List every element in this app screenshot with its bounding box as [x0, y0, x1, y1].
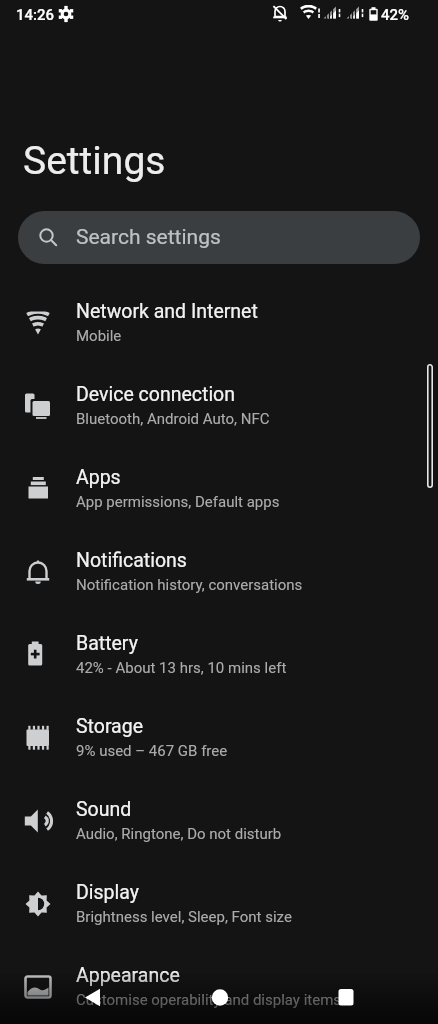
staticText: Appearance: [76, 964, 180, 987]
staticText: Bluetooth, Android Auto, NFC: [76, 410, 270, 428]
button[interactable]: Network and Internet: [0, 281, 438, 364]
button[interactable]: Sound: [0, 779, 438, 862]
staticText: Battery: [76, 632, 138, 655]
staticText: Notifications: [76, 549, 187, 572]
button[interactable]: Search settings: [18, 211, 420, 264]
staticText: Display: [76, 881, 139, 904]
staticText: 9% used – 467 GB free: [76, 742, 228, 760]
staticText: Brightness level, Sleep, Font size: [76, 908, 292, 926]
button[interactable]: Appearance: [0, 945, 438, 1024]
staticText: Customise operability and display items: [76, 991, 342, 1009]
staticText: Network and Internet: [76, 300, 258, 323]
staticText: Notification history, conversations: [76, 576, 303, 594]
staticText: Audio, Ringtone, Do not disturb: [76, 825, 282, 843]
staticText: Mobile: [76, 327, 122, 345]
staticText: Settings: [23, 138, 166, 184]
staticText: Device connection: [76, 383, 236, 406]
button[interactable]: [205, 984, 235, 1014]
staticText: Storage: [76, 715, 144, 738]
button[interactable]: Display: [0, 862, 438, 945]
button[interactable]: Storage: [0, 696, 438, 779]
staticText: 42% - About 13 hrs, 10 mins left: [76, 659, 287, 677]
button[interactable]: Apps: [0, 447, 438, 530]
button[interactable]: [331, 984, 361, 1014]
button[interactable]: Battery: [0, 613, 438, 696]
staticText: Apps: [76, 466, 121, 489]
button[interactable]: Device connection: [0, 364, 438, 447]
staticText: App permissions, Default apps: [76, 493, 280, 511]
button[interactable]: Notifications: [0, 530, 438, 613]
staticText: 42%: [381, 6, 410, 24]
staticText: Search settings: [76, 225, 221, 250]
button[interactable]: [78, 984, 108, 1014]
staticText: Sound: [76, 798, 132, 821]
staticText: 14:26: [16, 6, 55, 24]
